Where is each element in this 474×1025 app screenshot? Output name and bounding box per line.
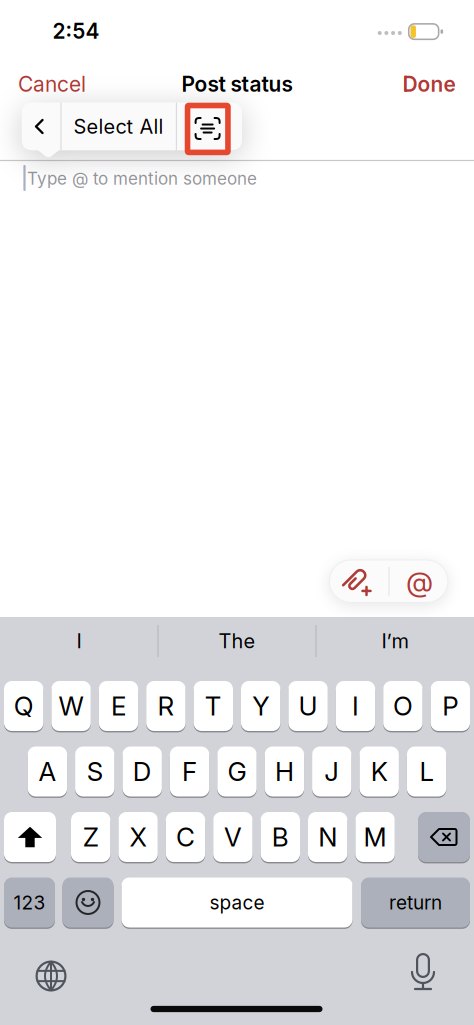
button[interactable]: T [194, 680, 233, 732]
button[interactable]: Dictate [398, 949, 448, 999]
staticText: T [205, 690, 222, 722]
button[interactable]: Done [402, 71, 455, 97]
staticText: R [157, 690, 174, 722]
button[interactable]: Select All [73, 114, 163, 139]
staticText: G [227, 756, 246, 787]
button[interactable]: C [166, 811, 205, 863]
staticText: V [224, 821, 242, 853]
button[interactable]: O [383, 680, 423, 732]
button[interactable]: X [118, 811, 158, 863]
staticText: L [420, 756, 434, 787]
button[interactable]: I [4, 621, 154, 661]
staticText: C [176, 821, 195, 853]
button[interactable]: U [288, 680, 328, 732]
button[interactable]: D [122, 746, 162, 797]
button[interactable]: V [213, 811, 253, 863]
button[interactable]: The [162, 621, 312, 661]
button[interactable]: Q [4, 680, 43, 732]
staticText: E [111, 690, 126, 722]
button[interactable]: N [308, 811, 347, 863]
staticText: X [130, 821, 147, 853]
button[interactable]: W [51, 680, 91, 732]
staticText: @ [406, 564, 433, 598]
staticText: H [275, 756, 294, 787]
staticText: I [76, 629, 81, 653]
button[interactable]: E [99, 680, 138, 732]
staticText: space [209, 891, 264, 914]
button[interactable]: K [359, 746, 399, 797]
staticText: F [182, 756, 197, 787]
staticText: W [59, 690, 84, 722]
staticText: N [318, 821, 337, 853]
staticText: O [393, 690, 413, 722]
button[interactable]: I [336, 680, 375, 732]
button[interactable]: P [431, 680, 470, 732]
staticText: Select All [73, 114, 163, 139]
button[interactable]: More items [33, 118, 46, 134]
staticText: Cancel [18, 71, 86, 97]
button[interactable]: R [146, 680, 186, 732]
button[interactable]: F [170, 746, 209, 797]
button[interactable]: A [28, 746, 67, 797]
staticText: B [272, 821, 289, 853]
button[interactable]: Scan text [193, 115, 223, 142]
staticText: Done [402, 71, 455, 97]
staticText: I’m [381, 629, 408, 653]
button[interactable]: space [121, 877, 352, 928]
staticText: 123 [13, 891, 45, 914]
staticText: Post status [181, 71, 292, 97]
button[interactable]: S [75, 746, 114, 797]
staticText: A [38, 756, 56, 787]
button[interactable]: J [312, 746, 351, 797]
staticText: Y [252, 690, 269, 722]
button[interactable]: L [407, 746, 446, 797]
staticText: K [371, 756, 388, 787]
button[interactable]: M [355, 811, 395, 863]
staticText: M [364, 821, 387, 853]
staticText: The [218, 629, 255, 653]
button[interactable]: Z [71, 811, 110, 863]
staticText: return [389, 891, 442, 914]
button[interactable]: G [217, 746, 257, 797]
staticText: Z [83, 821, 99, 853]
staticText: S [87, 756, 103, 787]
button[interactable]: Cancel [18, 71, 86, 97]
staticText: Q [14, 690, 34, 722]
staticText: Type @ to mention someone [27, 168, 257, 189]
button[interactable]: Add attachment [330, 559, 386, 603]
button[interactable]: 123 [4, 877, 55, 928]
button[interactable]: B [261, 811, 300, 863]
staticText: I [352, 690, 359, 722]
button[interactable]: Next keyboard [26, 951, 76, 1001]
button[interactable]: H [265, 746, 304, 797]
staticText: J [324, 756, 339, 787]
button[interactable]: Shift [4, 811, 56, 863]
staticText: P [442, 690, 458, 722]
button[interactable]: I’m [320, 621, 470, 661]
button[interactable]: return [361, 877, 470, 928]
button[interactable]: Mention [391, 559, 447, 603]
staticText: D [133, 756, 152, 787]
staticText: U [299, 690, 318, 722]
button[interactable]: Emoji [62, 877, 113, 928]
staticText: 2:54 [52, 18, 99, 44]
button[interactable]: Y [241, 680, 280, 732]
button[interactable]: Delete [418, 811, 470, 863]
